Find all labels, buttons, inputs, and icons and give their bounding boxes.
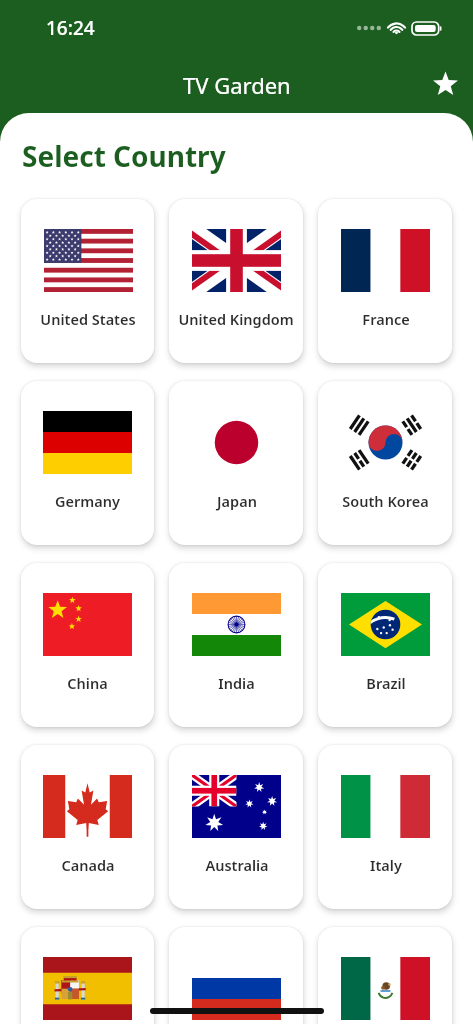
staticText: China <box>67 673 108 693</box>
button[interactable]: Favorites <box>422 62 468 108</box>
button[interactable]: France <box>318 199 452 363</box>
staticText: TV Garden <box>183 70 291 100</box>
button[interactable]: Russia <box>169 927 303 1024</box>
staticText: United States <box>40 309 136 329</box>
staticText: Italy <box>370 855 402 875</box>
button[interactable]: Italy <box>318 745 452 909</box>
staticText: 16:24 <box>46 15 95 41</box>
button[interactable]: Mexico <box>318 927 452 1024</box>
button[interactable]: Brazil <box>318 563 452 727</box>
staticText: Canada <box>61 855 115 875</box>
staticText: Japan <box>217 491 257 511</box>
button[interactable]: United Kingdom <box>169 199 303 363</box>
staticText: Germany <box>55 491 120 511</box>
button[interactable]: China <box>21 563 154 727</box>
button[interactable]: United States <box>21 199 154 363</box>
button[interactable]: Australia <box>169 745 303 909</box>
button[interactable]: Germany <box>21 381 154 545</box>
staticText: France <box>362 309 410 329</box>
staticText: India <box>218 673 255 693</box>
button[interactable]: Spain <box>21 927 154 1024</box>
staticText: South Korea <box>342 491 429 511</box>
staticText: Australia <box>205 855 269 875</box>
button[interactable]: Canada <box>21 745 154 909</box>
button[interactable]: India <box>169 563 303 727</box>
staticText: Select Country <box>22 137 226 175</box>
staticText: United Kingdom <box>178 309 294 329</box>
button[interactable]: Japan <box>169 381 303 545</box>
button[interactable]: South Korea <box>318 381 452 545</box>
staticText: Brazil <box>366 673 406 693</box>
